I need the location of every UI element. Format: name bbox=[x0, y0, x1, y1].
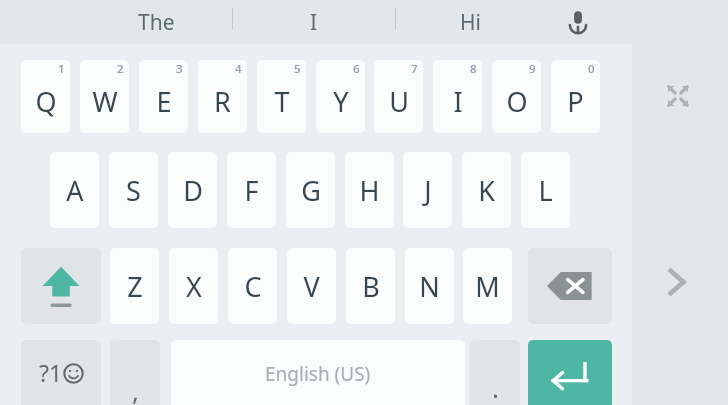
staticText: T bbox=[274, 83, 290, 120]
button[interactable]: M bbox=[463, 248, 512, 324]
staticText: Q bbox=[35, 83, 57, 120]
staticText: 9 bbox=[529, 61, 536, 77]
button[interactable]: English (US) bbox=[171, 340, 465, 405]
button[interactable]: W bbox=[80, 60, 129, 133]
button[interactable]: Backspace bbox=[528, 248, 612, 324]
staticText: R bbox=[214, 83, 231, 120]
staticText: O bbox=[506, 83, 528, 120]
button[interactable]: D bbox=[168, 152, 217, 228]
button[interactable]: B bbox=[346, 248, 395, 324]
button[interactable]: K bbox=[462, 152, 511, 228]
button[interactable]: H bbox=[345, 152, 394, 228]
staticText: 0 bbox=[588, 61, 595, 77]
staticText: 3 bbox=[176, 61, 183, 77]
button[interactable]: V bbox=[287, 248, 336, 324]
button[interactable]: L bbox=[521, 152, 570, 228]
staticText: U bbox=[389, 83, 409, 120]
staticText: Y bbox=[333, 83, 349, 120]
staticText: V bbox=[303, 268, 320, 305]
button[interactable]: . bbox=[470, 340, 520, 405]
staticText: Hi bbox=[460, 8, 481, 37]
staticText: H bbox=[359, 172, 380, 209]
button[interactable]: X bbox=[169, 248, 218, 324]
staticText: X bbox=[186, 268, 202, 305]
button[interactable]: Symbols and emoji bbox=[21, 340, 101, 405]
staticText: A bbox=[66, 172, 84, 209]
staticText: I bbox=[453, 83, 463, 120]
staticText: The bbox=[138, 8, 175, 37]
staticText: . bbox=[492, 370, 499, 405]
button[interactable]: Enter bbox=[528, 340, 612, 405]
button[interactable]: Shift bbox=[21, 248, 101, 324]
staticText: 5 bbox=[294, 61, 301, 77]
button[interactable]: T bbox=[257, 60, 306, 133]
staticText: S bbox=[126, 172, 141, 209]
staticText: D bbox=[183, 172, 203, 209]
button[interactable]: F bbox=[227, 152, 276, 228]
staticText: M bbox=[475, 268, 500, 305]
button[interactable]: R bbox=[198, 60, 247, 133]
staticText: I bbox=[310, 8, 318, 37]
staticText: , bbox=[132, 373, 139, 405]
button[interactable]: Resize keyboard bbox=[654, 72, 702, 120]
staticText: K bbox=[478, 172, 495, 209]
button[interactable]: Y bbox=[316, 60, 365, 133]
staticText: ?1 bbox=[39, 357, 63, 388]
button[interactable]: , bbox=[110, 340, 160, 405]
staticText: 8 bbox=[470, 61, 477, 77]
button[interactable]: Z bbox=[110, 248, 159, 324]
button[interactable]: E bbox=[139, 60, 188, 133]
button[interactable]: N bbox=[405, 248, 454, 324]
button[interactable]: O bbox=[492, 60, 541, 133]
staticText: Z bbox=[127, 268, 143, 305]
staticText: J bbox=[424, 172, 432, 209]
staticText: English (US) bbox=[265, 361, 371, 387]
button[interactable]: G bbox=[286, 152, 335, 228]
button[interactable]: I bbox=[233, 0, 395, 44]
button[interactable]: P bbox=[551, 60, 600, 133]
staticText: 7 bbox=[411, 61, 418, 77]
button[interactable]: Voice input bbox=[550, 0, 606, 44]
button[interactable]: Next bbox=[653, 258, 701, 306]
staticText: 2 bbox=[117, 61, 124, 77]
button[interactable]: Hi bbox=[396, 0, 544, 44]
staticText: G bbox=[301, 172, 321, 209]
staticText: C bbox=[244, 268, 262, 305]
button[interactable]: A bbox=[50, 152, 99, 228]
button[interactable]: I bbox=[433, 60, 482, 133]
staticText: L bbox=[538, 172, 553, 209]
staticText: 1 bbox=[58, 61, 65, 77]
staticText: N bbox=[419, 268, 440, 305]
button[interactable]: J bbox=[403, 152, 452, 228]
button[interactable]: S bbox=[109, 152, 158, 228]
button[interactable]: U bbox=[374, 60, 423, 133]
button[interactable]: C bbox=[228, 248, 277, 324]
staticText: W bbox=[92, 83, 118, 120]
staticText: 6 bbox=[353, 61, 360, 77]
button[interactable]: The bbox=[80, 0, 232, 44]
staticText: E bbox=[156, 83, 172, 120]
staticText: P bbox=[567, 83, 584, 120]
button[interactable]: Q bbox=[21, 60, 70, 133]
staticText: B bbox=[362, 268, 380, 305]
staticText: 4 bbox=[235, 61, 242, 77]
staticText: F bbox=[244, 172, 259, 209]
